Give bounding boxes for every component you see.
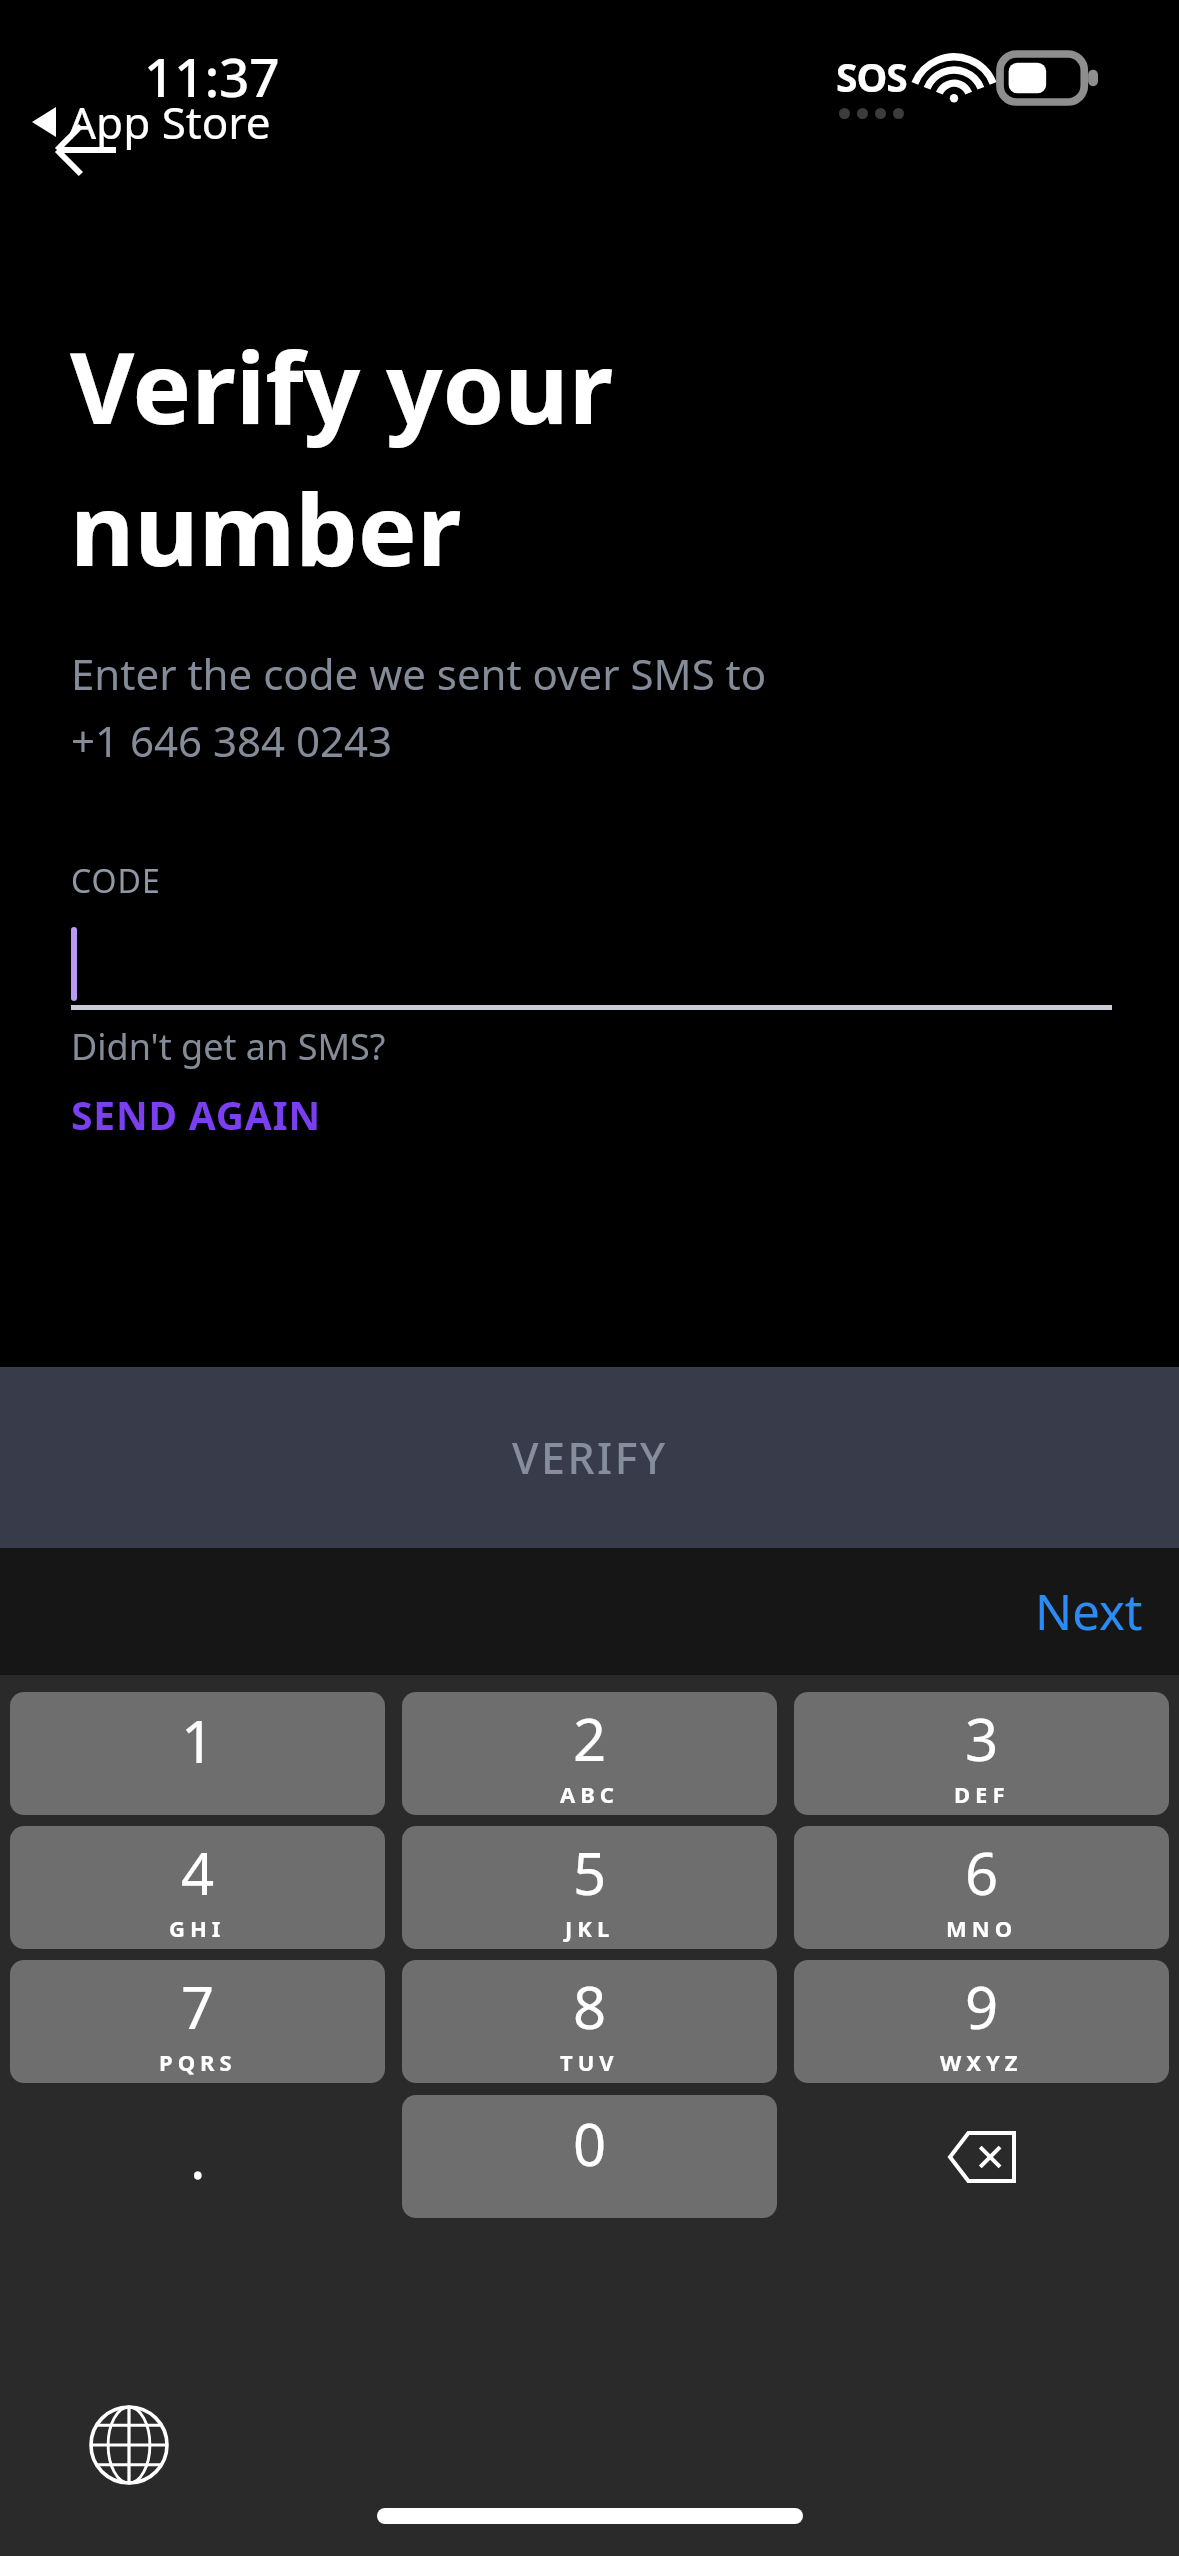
staticText: 2 — [573, 1699, 607, 1778]
button[interactable]: VERIFY — [0, 1367, 1179, 1548]
button[interactable]: 9 — [794, 1960, 1169, 2083]
staticText: number — [70, 460, 462, 595]
staticText: 11:37 — [144, 40, 280, 112]
staticText: 0 — [573, 2104, 607, 2183]
staticText: Next — [1035, 1578, 1143, 1645]
button[interactable]: . — [10, 2095, 385, 2218]
staticText: TUV — [560, 2047, 619, 2077]
staticText: 8 — [573, 1967, 607, 2046]
button[interactable]: 3 — [794, 1692, 1169, 1815]
button[interactable]: Next — [1021, 1566, 1157, 1657]
staticText: 7 — [181, 1967, 215, 2046]
staticText: GHI — [169, 1913, 226, 1943]
button[interactable]: 2 — [402, 1692, 777, 1815]
staticText: WXYZ — [940, 2047, 1023, 2077]
staticText: Verify your — [70, 318, 613, 453]
staticText: 5 — [573, 1833, 607, 1912]
button[interactable]: 6 — [794, 1826, 1169, 1949]
staticText: 9 — [965, 1967, 999, 2046]
staticText: ABC — [560, 1779, 619, 1809]
staticText: Enter the code we sent over SMS to — [71, 645, 767, 702]
staticText: MNO — [946, 1913, 1018, 1943]
staticText: +1 646 384 0243 — [71, 712, 393, 769]
button[interactable]: Backspace — [794, 2095, 1169, 2218]
button[interactable]: 8 — [402, 1960, 777, 2083]
staticText: . — [190, 2117, 206, 2196]
button[interactable]: 5 — [402, 1826, 777, 1949]
button[interactable]: SEND AGAIN — [71, 1088, 322, 1141]
staticText: PQRS — [159, 2047, 237, 2077]
staticText: 4 — [181, 1833, 215, 1912]
button[interactable]: 1 — [10, 1692, 385, 1815]
staticText: Didn't get an SMS? — [71, 1022, 386, 1071]
staticText: SEND AGAIN — [71, 1088, 322, 1141]
button[interactable]: Change keyboard language — [68, 2384, 190, 2506]
button[interactable]: 7 — [10, 1960, 385, 2083]
staticText: CODE — [71, 859, 161, 903]
staticText: 1 — [181, 1701, 215, 1780]
button[interactable]: 4 — [10, 1826, 385, 1949]
staticText: App Store — [68, 92, 271, 152]
staticText: JKL — [565, 1913, 615, 1943]
button[interactable]: 0 — [402, 2095, 777, 2218]
staticText: VERIFY — [512, 1428, 668, 1487]
staticText: SOS — [836, 50, 907, 103]
button[interactable]: Back — [28, 92, 144, 208]
staticText: DEF — [954, 1779, 1010, 1809]
staticText: 3 — [965, 1699, 999, 1778]
staticText: 6 — [965, 1833, 999, 1912]
